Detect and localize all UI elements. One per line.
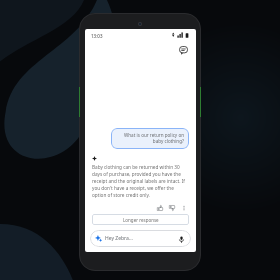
- button[interactable]: Hey Zebra...: [90, 230, 191, 247]
- button[interactable]: More options: [179, 203, 188, 212]
- button[interactable]: Voice input: [176, 234, 186, 244]
- staticText: Hey Zebra...: [105, 235, 133, 242]
- staticText: Longer response: [123, 217, 159, 223]
- staticText: Baby clothing can be returned within 30 …: [92, 164, 189, 199]
- staticText: 13:03: [91, 33, 103, 39]
- button[interactable]: Chat history: [177, 44, 190, 57]
- button[interactable]: What is our return policy on baby clothi…: [111, 128, 189, 149]
- button[interactable]: Thumbs up: [155, 203, 164, 212]
- button[interactable]: Longer response: [92, 214, 189, 225]
- staticText: What is our return policy on baby clothi…: [116, 132, 184, 145]
- button[interactable]: Thumbs down: [167, 203, 176, 212]
